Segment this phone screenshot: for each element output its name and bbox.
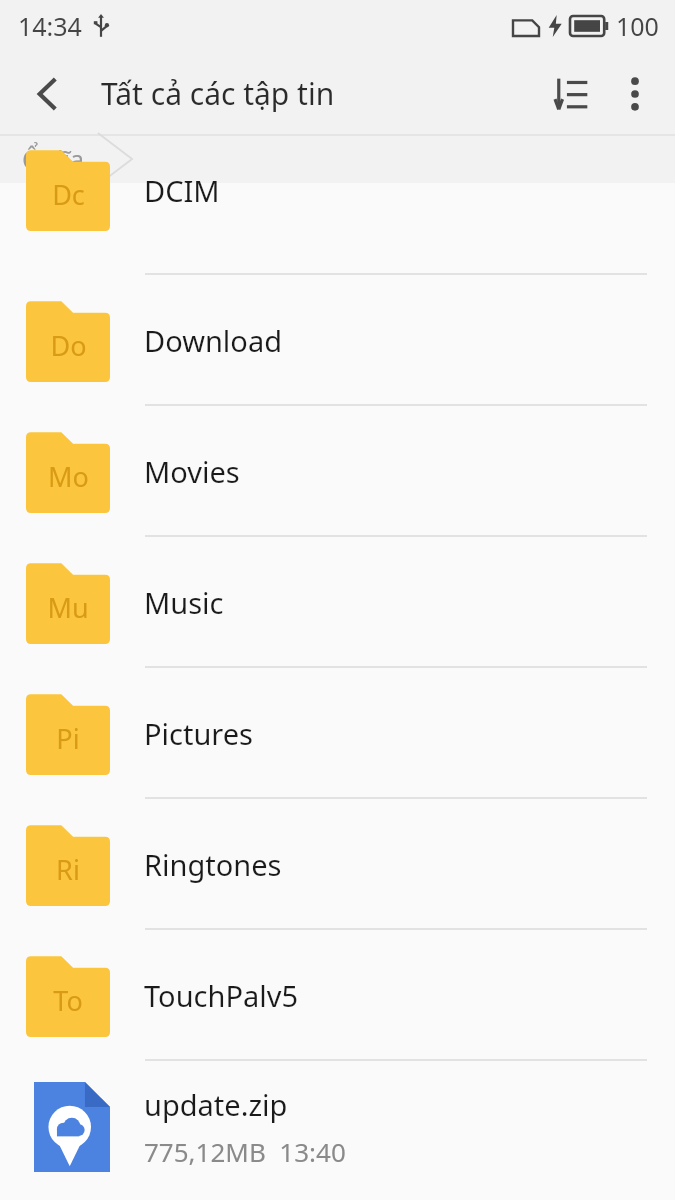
staticText: Pictures [144, 714, 253, 753]
staticText: Do [50, 327, 87, 364]
button[interactable]: Do [0, 275, 675, 406]
button[interactable]: Ổ đĩa [0, 142, 106, 176]
button[interactable]: Pi [0, 668, 675, 799]
staticText: Download [144, 321, 282, 360]
staticText: Mu [47, 589, 89, 626]
button[interactable]: Mo [0, 406, 675, 537]
staticText: Ri [56, 851, 80, 888]
staticText: Ổ đĩa [22, 142, 84, 176]
staticText: DCIM [144, 171, 220, 210]
staticText: 14:34 [18, 9, 82, 43]
staticText: Tất cả các tập tin [101, 73, 335, 114]
staticText: Dc [52, 176, 85, 213]
staticText: 775,12MB 13:40 [144, 1134, 346, 1169]
button[interactable]: Ri [0, 799, 675, 930]
staticText: Music [144, 583, 224, 622]
button[interactable]: Back [22, 68, 74, 120]
staticText: 100 [616, 9, 659, 43]
staticText: TouchPalv5 [144, 976, 299, 1015]
button[interactable]: More options [603, 62, 667, 126]
staticText: To [53, 982, 83, 1019]
button[interactable]: update.zip [0, 1061, 675, 1192]
staticText: Movies [144, 452, 240, 491]
button[interactable]: Sort [539, 62, 603, 126]
staticText: update.zip [144, 1085, 288, 1124]
staticText: Ringtones [144, 845, 282, 884]
button[interactable]: Mu [0, 537, 675, 668]
staticText: Pi [56, 720, 80, 757]
staticText: Mo [48, 458, 89, 495]
button[interactable]: To [0, 930, 675, 1061]
button[interactable]: Dc [0, 183, 675, 275]
